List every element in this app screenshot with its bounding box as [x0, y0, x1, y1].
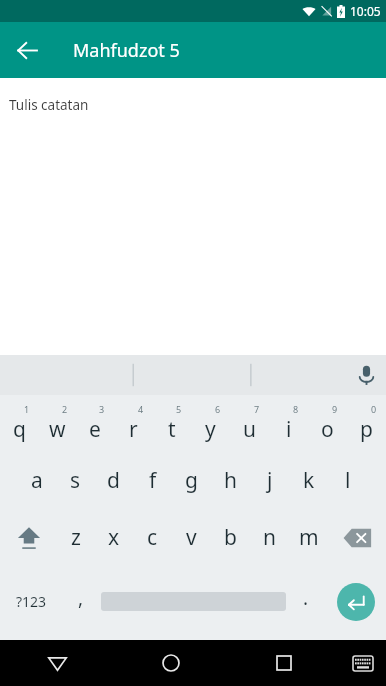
button[interactable]: Back [3, 26, 51, 74]
staticText: z [71, 523, 81, 552]
button[interactable]: Enter [325, 566, 386, 637]
button[interactable]: Back [0, 640, 114, 686]
staticText: f [149, 466, 157, 495]
button[interactable]: . [287, 566, 325, 637]
staticText: Mahfudzot 5 [73, 38, 180, 63]
button[interactable]: v [172, 509, 211, 566]
staticText: 1 [24, 403, 30, 415]
staticText: h [224, 466, 237, 495]
staticText: . [303, 585, 309, 611]
button[interactable]: Recents [227, 640, 340, 686]
staticText: m [299, 523, 319, 552]
staticText: g [185, 466, 198, 495]
button[interactable]: h [211, 452, 250, 509]
staticText: e [89, 415, 101, 444]
button[interactable]: 5 [152, 395, 191, 452]
staticText: n [263, 523, 276, 552]
button[interactable]: , [62, 566, 100, 637]
staticText: 9 [332, 403, 338, 415]
button[interactable]: Switch keyboard [340, 640, 386, 686]
button[interactable]: c [133, 509, 172, 566]
staticText: r [129, 415, 138, 444]
staticText: 4 [138, 403, 144, 415]
button[interactable]: b [211, 509, 250, 566]
button[interactable]: 8 [269, 395, 308, 452]
button[interactable]: Home [114, 640, 227, 686]
staticText: u [243, 415, 256, 444]
staticText: ?123 [16, 592, 47, 611]
button[interactable]: a [18, 452, 56, 509]
staticText: 7 [254, 403, 260, 415]
button[interactable]: ?123 [0, 566, 62, 637]
staticText: d [107, 466, 120, 495]
button[interactable]: 2 [38, 395, 76, 452]
staticText: 6 [215, 403, 221, 415]
staticText: y [205, 415, 216, 444]
staticText: c [147, 523, 158, 552]
staticText: 0 [371, 403, 377, 415]
staticText: a [31, 466, 43, 495]
staticText: l [345, 466, 351, 495]
staticText: 8 [293, 403, 299, 415]
button[interactable]: Space [100, 566, 287, 637]
button[interactable]: f [133, 452, 172, 509]
button[interactable]: Backspace [328, 509, 386, 566]
staticText: 5 [176, 403, 182, 415]
button[interactable]: 0 [347, 395, 386, 452]
button[interactable]: n [250, 509, 289, 566]
staticText: Tulis catatan [9, 96, 89, 114]
button[interactable]: 9 [308, 395, 347, 452]
button[interactable]: 3 [76, 395, 114, 452]
button[interactable]: 4 [114, 395, 152, 452]
button[interactable]: s [56, 452, 94, 509]
staticText: k [303, 466, 315, 495]
button[interactable]: l [328, 452, 367, 509]
staticText: q [13, 415, 26, 444]
button[interactable]: z [57, 509, 95, 566]
staticText: w [49, 415, 66, 444]
staticText: v [186, 523, 197, 552]
button[interactable]: Tulis catatan [0, 78, 386, 355]
staticText: b [224, 523, 237, 552]
button[interactable]: g [172, 452, 211, 509]
staticText: p [360, 415, 373, 444]
button[interactable]: 6 [191, 395, 230, 452]
staticText: j [267, 466, 273, 495]
button[interactable]: j [250, 452, 289, 509]
staticText: x [108, 523, 120, 552]
button[interactable]: d [94, 452, 133, 509]
button[interactable]: Voice input [346, 355, 386, 395]
button[interactable]: Shift [0, 509, 57, 566]
staticText: 2 [62, 403, 68, 415]
button[interactable]: 1 [0, 395, 38, 452]
staticText: o [321, 415, 334, 444]
button[interactable]: m [289, 509, 328, 566]
staticText: 10:05 [350, 3, 381, 19]
staticText: i [286, 415, 292, 444]
button[interactable]: 7 [230, 395, 269, 452]
button[interactable]: k [289, 452, 328, 509]
staticText: t [168, 415, 176, 444]
button[interactable]: x [95, 509, 133, 566]
staticText: 3 [99, 403, 105, 415]
staticText: s [70, 466, 81, 495]
staticText: , [78, 585, 84, 611]
